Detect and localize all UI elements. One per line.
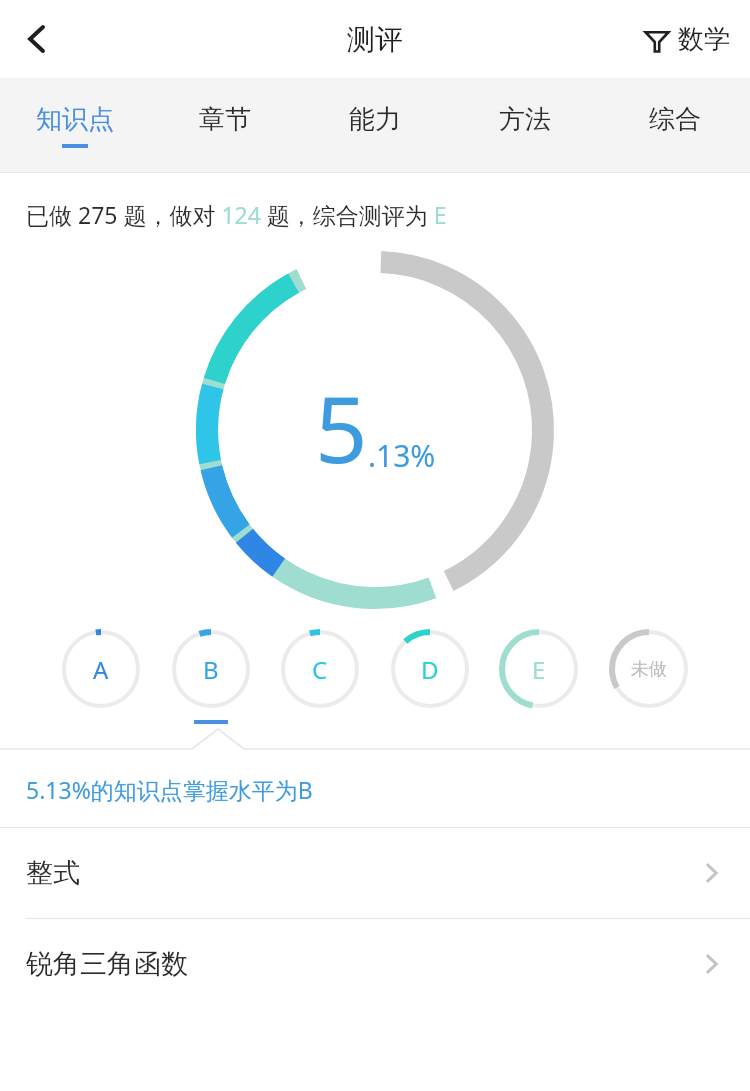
button[interactable]: 知识点 [0,78,150,173]
staticText: 锐角三角函数 [26,947,698,981]
staticText: .13% [368,435,436,476]
staticText: 方法 [499,103,551,136]
button[interactable]: 综合 [600,78,750,173]
button[interactable]: 锐角三角函数 [0,919,750,1009]
button[interactable]: 未做 [610,630,688,724]
button[interactable]: 数学 [638,15,736,64]
staticText: 未做 [631,658,667,681]
staticText: 能力 [349,103,401,136]
button[interactable]: A [62,630,140,724]
staticText: 5.13%的知识点掌握水平为B [26,774,313,805]
button[interactable]: D [391,630,469,724]
staticText: 5 [315,365,368,490]
staticText: A [93,653,109,686]
button[interactable]: 能力 [300,78,450,173]
staticText: 数学 [678,23,730,56]
staticText: 综合 [649,103,701,136]
button[interactable]: C [281,630,359,724]
staticText: 测评 [347,22,403,57]
staticText: E [532,653,546,686]
staticText: C [312,653,328,686]
button[interactable]: 章节 [150,78,300,173]
button[interactable]: 方法 [450,78,600,173]
staticText: 已做 275 题，做对 124 题，综合测评为 E [26,199,447,230]
staticText: 章节 [199,103,251,136]
staticText: D [421,653,439,686]
button[interactable]: Back [6,8,68,70]
button[interactable]: E [500,630,578,724]
staticText: 整式 [26,856,698,890]
staticText: 知识点 [36,103,114,136]
staticText: B [203,653,219,686]
button[interactable]: B [172,630,250,724]
button[interactable]: 整式 [0,828,750,918]
